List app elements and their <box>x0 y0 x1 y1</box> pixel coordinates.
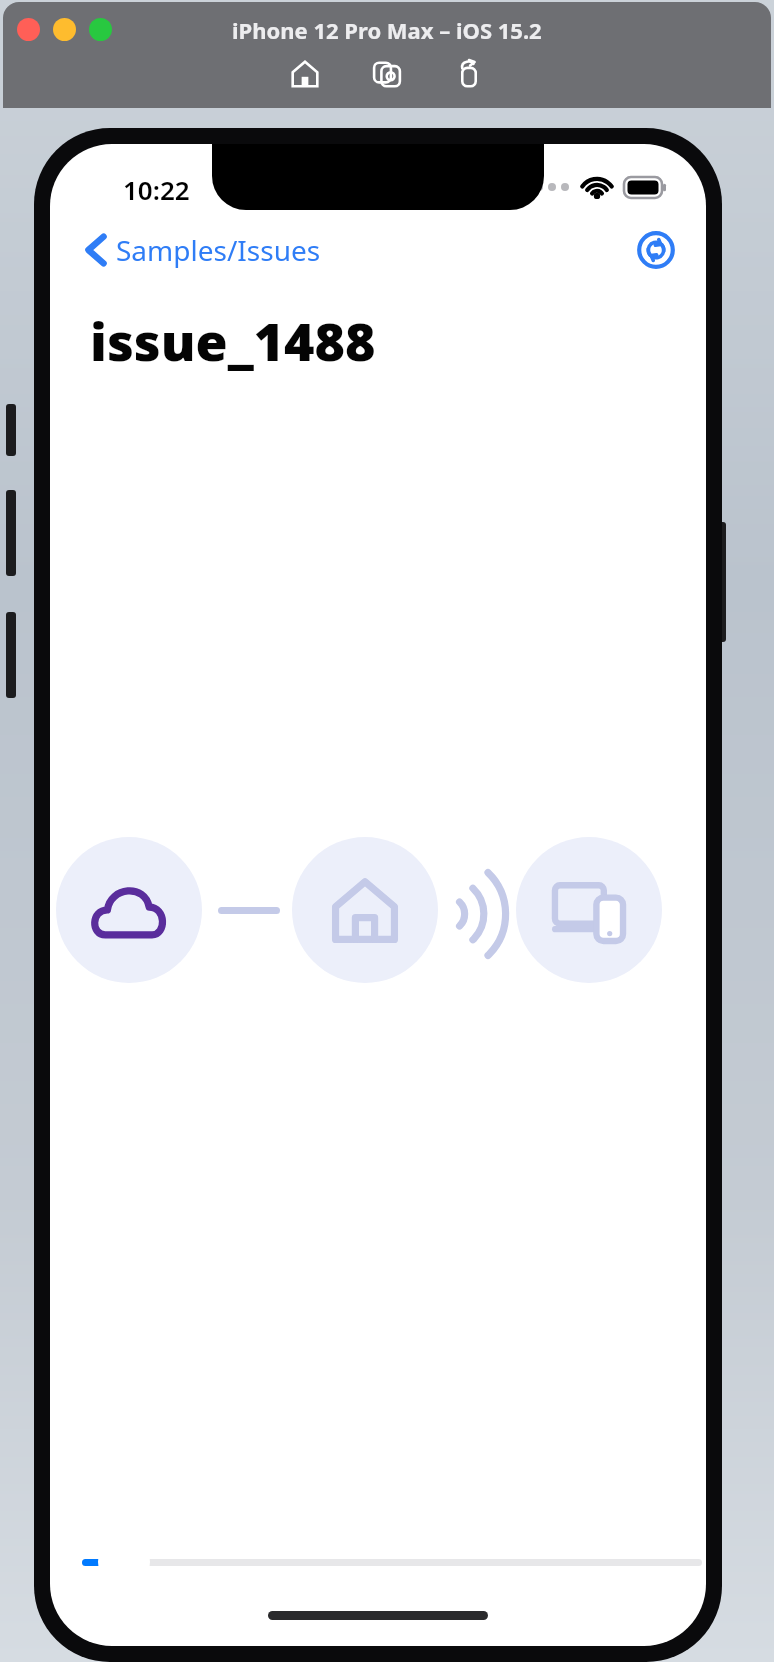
staticText: iPhone 12 Pro Max – iOS 15.2 <box>232 15 542 45</box>
button[interactable]: Screenshot <box>366 53 408 95</box>
button[interactable]: Refresh <box>628 222 684 278</box>
staticText: issue_1488 <box>90 305 376 376</box>
button[interactable]: Home network <box>292 837 438 983</box>
button[interactable]: Cloud <box>56 837 202 983</box>
button[interactable]: Window control <box>89 18 112 41</box>
button[interactable]: Window control <box>17 18 40 41</box>
button[interactable]: Rotate <box>448 53 490 95</box>
button[interactable]: Window control <box>53 18 76 41</box>
staticText: Samples/Issues <box>116 231 321 269</box>
staticText: 10:22 <box>123 172 190 207</box>
button[interactable]: Devices <box>516 837 662 983</box>
button[interactable]: Samples/Issues <box>80 225 327 275</box>
button[interactable]: Home <box>284 53 326 95</box>
